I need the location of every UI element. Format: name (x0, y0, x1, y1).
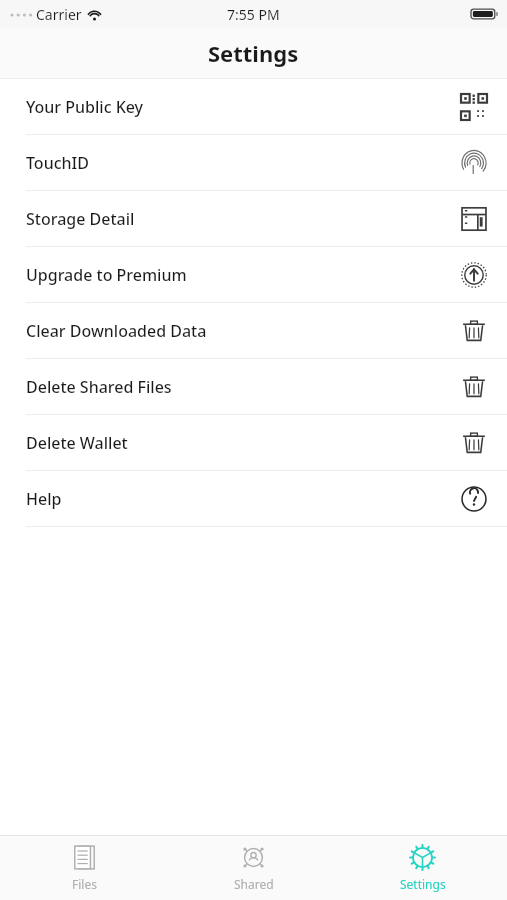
staticText: Help (26, 488, 62, 510)
staticText: Storage Detail (26, 208, 135, 230)
button[interactable]: Clear Downloaded Data (0, 303, 507, 359)
other: Delete (461, 430, 487, 456)
staticText: Shared (234, 876, 274, 892)
staticText: Delete Shared Files (26, 376, 172, 398)
button[interactable]: Storage Detail (0, 191, 507, 247)
button[interactable]: Delete Shared Files (0, 359, 507, 415)
staticText: Delete Wallet (26, 432, 128, 454)
staticText: Settings (208, 38, 299, 68)
other: Upgrade to Premium (461, 262, 487, 288)
button[interactable]: Upgrade to Premium (0, 247, 507, 303)
other: Your Public Key QR (461, 94, 487, 120)
other: TouchID (461, 150, 487, 176)
other: Help (461, 486, 487, 512)
staticText: Upgrade to Premium (26, 264, 187, 286)
staticText: Your Public Key (26, 96, 144, 118)
button[interactable]: Settings (338, 836, 507, 900)
staticText: Settings (400, 876, 446, 892)
button[interactable]: Your Public Key (0, 79, 507, 135)
other: Delete (461, 374, 487, 400)
other: Delete (461, 318, 487, 344)
button[interactable]: Delete Wallet (0, 415, 507, 471)
staticText: TouchID (26, 152, 89, 174)
button[interactable]: Shared (169, 836, 338, 900)
staticText: Files (72, 876, 97, 892)
button[interactable]: Help (0, 471, 507, 527)
button[interactable]: TouchID (0, 135, 507, 191)
staticText: Clear Downloaded Data (26, 320, 207, 342)
button[interactable]: Files (0, 836, 169, 900)
other: Storage Detail (461, 206, 487, 232)
staticText: Carrier (36, 5, 82, 24)
staticText: 7:55 PM (227, 5, 280, 24)
